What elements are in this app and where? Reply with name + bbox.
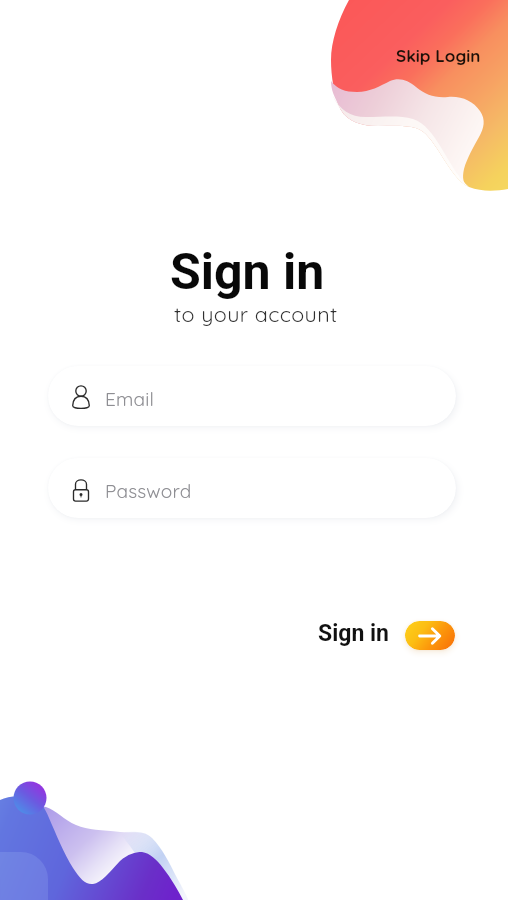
button[interactable]: Skip Login: [396, 45, 481, 66]
staticText: Sign in: [170, 243, 325, 302]
button[interactable]: Sign in: [405, 621, 455, 650]
staticText: Email: [105, 387, 155, 411]
staticText: Sign in: [318, 620, 389, 647]
button[interactable]: Email: [48, 366, 456, 426]
staticText: to your account: [174, 300, 338, 327]
staticText: Skip Login: [396, 45, 481, 66]
button[interactable]: Password: [48, 458, 456, 518]
staticText: Password: [105, 479, 192, 503]
button[interactable]: Sign in: [318, 620, 389, 647]
